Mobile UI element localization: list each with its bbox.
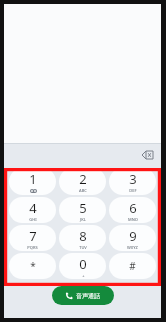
staticText: 4 [29, 199, 37, 217]
button[interactable]: # [109, 253, 156, 279]
button[interactable]: * [9, 253, 56, 279]
button[interactable]: 0 [59, 253, 106, 279]
staticText: 8 [79, 227, 87, 245]
button[interactable]: 2 [59, 168, 106, 195]
button[interactable]: 7 [9, 225, 56, 251]
button[interactable]: 6 [109, 197, 156, 223]
button[interactable]: 3 [109, 168, 156, 195]
staticText: 9 [129, 227, 137, 245]
staticText: MNO [128, 217, 138, 222]
button[interactable]: Backspace [139, 147, 155, 163]
staticText: 3 [129, 170, 137, 188]
staticText: WXYZ [127, 245, 138, 250]
button[interactable]: 4 [9, 197, 56, 223]
staticText: 2 [79, 170, 87, 188]
staticText: JKL [80, 217, 86, 222]
button[interactable]: 5 [59, 197, 106, 223]
button[interactable]: 1 [9, 168, 56, 195]
staticText: DEF [129, 188, 137, 193]
staticText: # [129, 259, 136, 273]
staticText: 1 [29, 170, 37, 188]
button[interactable]: 音声通話 [52, 286, 114, 305]
staticText: GHI [29, 217, 37, 222]
staticText: 6 [129, 199, 137, 217]
staticText: + [82, 273, 85, 278]
button[interactable]: 9 [109, 225, 156, 251]
staticText: TUV [79, 245, 87, 250]
staticText: * [30, 259, 36, 273]
staticText: 0 [79, 255, 87, 273]
staticText: PQRS [27, 245, 38, 250]
staticText: 音声通話 [76, 292, 100, 300]
staticText: 5 [79, 199, 87, 217]
button[interactable]: 8 [59, 225, 106, 251]
staticText: ABC [79, 188, 87, 193]
staticText: 7 [29, 227, 37, 245]
